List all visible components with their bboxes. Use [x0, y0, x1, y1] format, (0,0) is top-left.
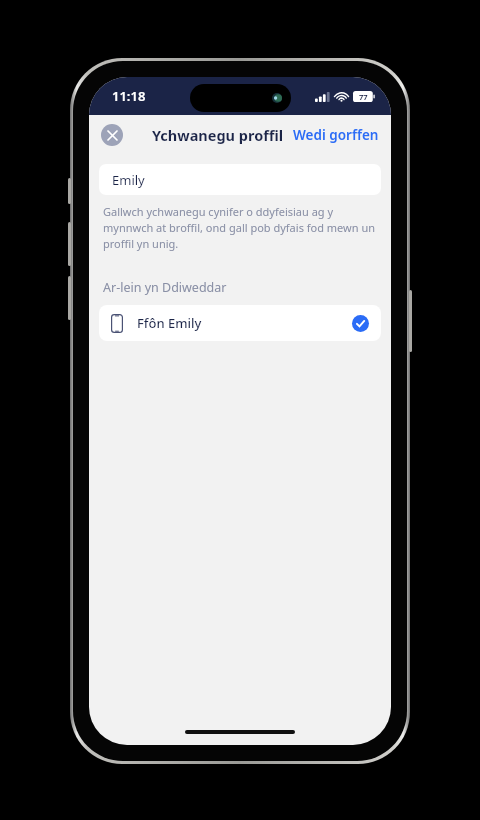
staticText: Ychwanegu proffil	[152, 125, 284, 145]
button[interactable]: Emily	[99, 164, 381, 195]
staticText: Ar-lein yn Ddiweddar	[103, 279, 227, 296]
button[interactable]: Wedi gorffen	[293, 126, 379, 144]
button[interactable]: Close	[101, 124, 123, 146]
staticText: 77	[359, 92, 368, 102]
button[interactable]: Ffôn Emily	[99, 305, 381, 341]
staticText: Ffôn Emily	[137, 314, 202, 332]
staticText: Gallwch ychwanegu cynifer o ddyfeisiau a…	[103, 204, 377, 251]
staticText: 11:18	[112, 87, 146, 105]
staticText: Wedi gorffen	[293, 126, 379, 144]
staticText: Emily	[112, 171, 145, 189]
